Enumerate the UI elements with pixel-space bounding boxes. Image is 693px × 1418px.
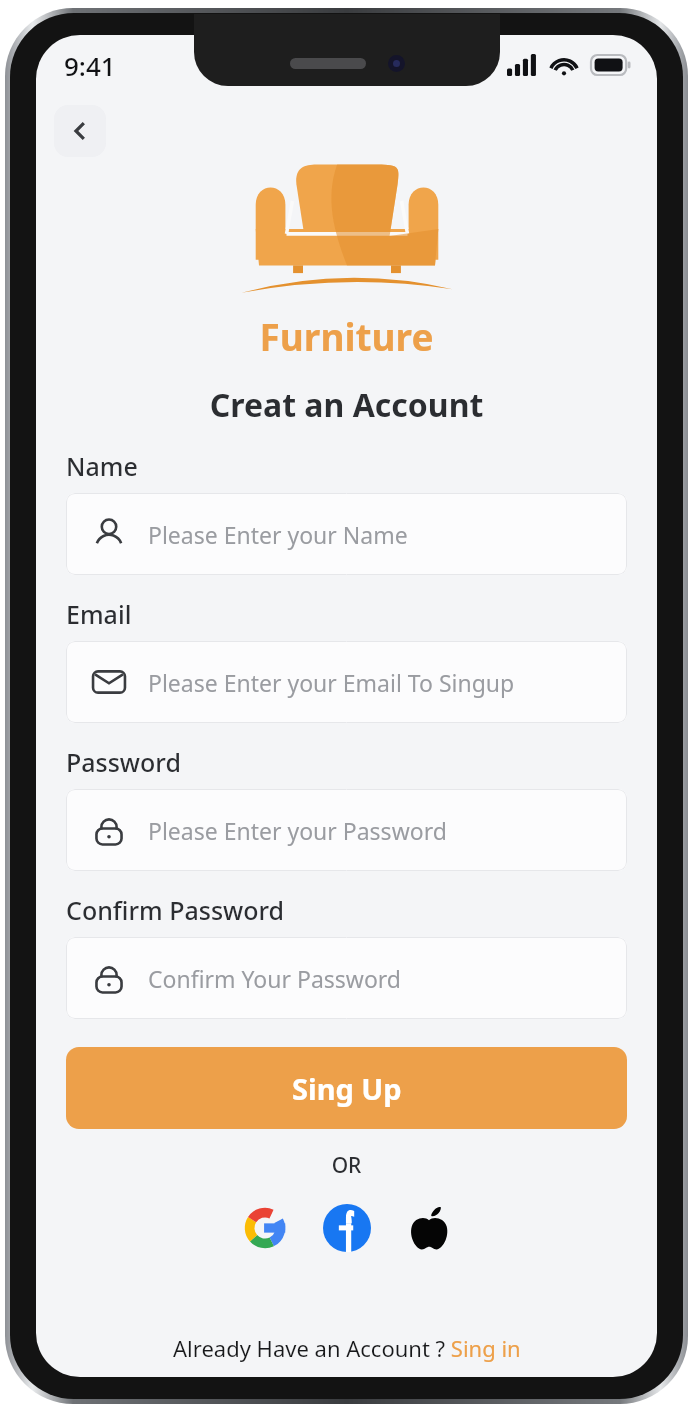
staticText: Creat an Account [36,383,657,427]
staticText: Email [66,597,132,631]
staticText: Sing Up [292,1069,402,1108]
button[interactable]: Back [54,105,106,157]
button[interactable]: Already Have an Account ? Sing in [36,1333,657,1377]
staticText: Please Enter your Email To Singup [148,667,515,698]
button[interactable]: Sign up with Google [237,1200,293,1256]
button[interactable]: Confirm Your Password [66,937,627,1019]
button[interactable]: Sign up with Apple [401,1200,457,1256]
staticText: OR [36,1151,657,1180]
staticText: Confirm Password [66,893,285,927]
button[interactable]: Please Enter your Password [66,789,627,871]
button[interactable]: Please Enter your Name [66,493,627,575]
staticText: 9:41 [64,48,116,83]
staticText: Please Enter your Name [148,519,408,550]
button[interactable]: Sing Up [66,1047,627,1129]
button[interactable]: Please Enter your Email To Singup [66,641,627,723]
staticText: Furniture [36,311,657,361]
staticText: Password [66,745,181,779]
staticText: Already Have an Account ? Sing in [173,1333,521,1363]
staticText: Confirm Your Password [148,963,402,994]
button[interactable]: Sign up with Facebook [319,1200,375,1256]
staticText: Name [66,449,138,483]
staticText: Please Enter your Password [148,815,447,846]
